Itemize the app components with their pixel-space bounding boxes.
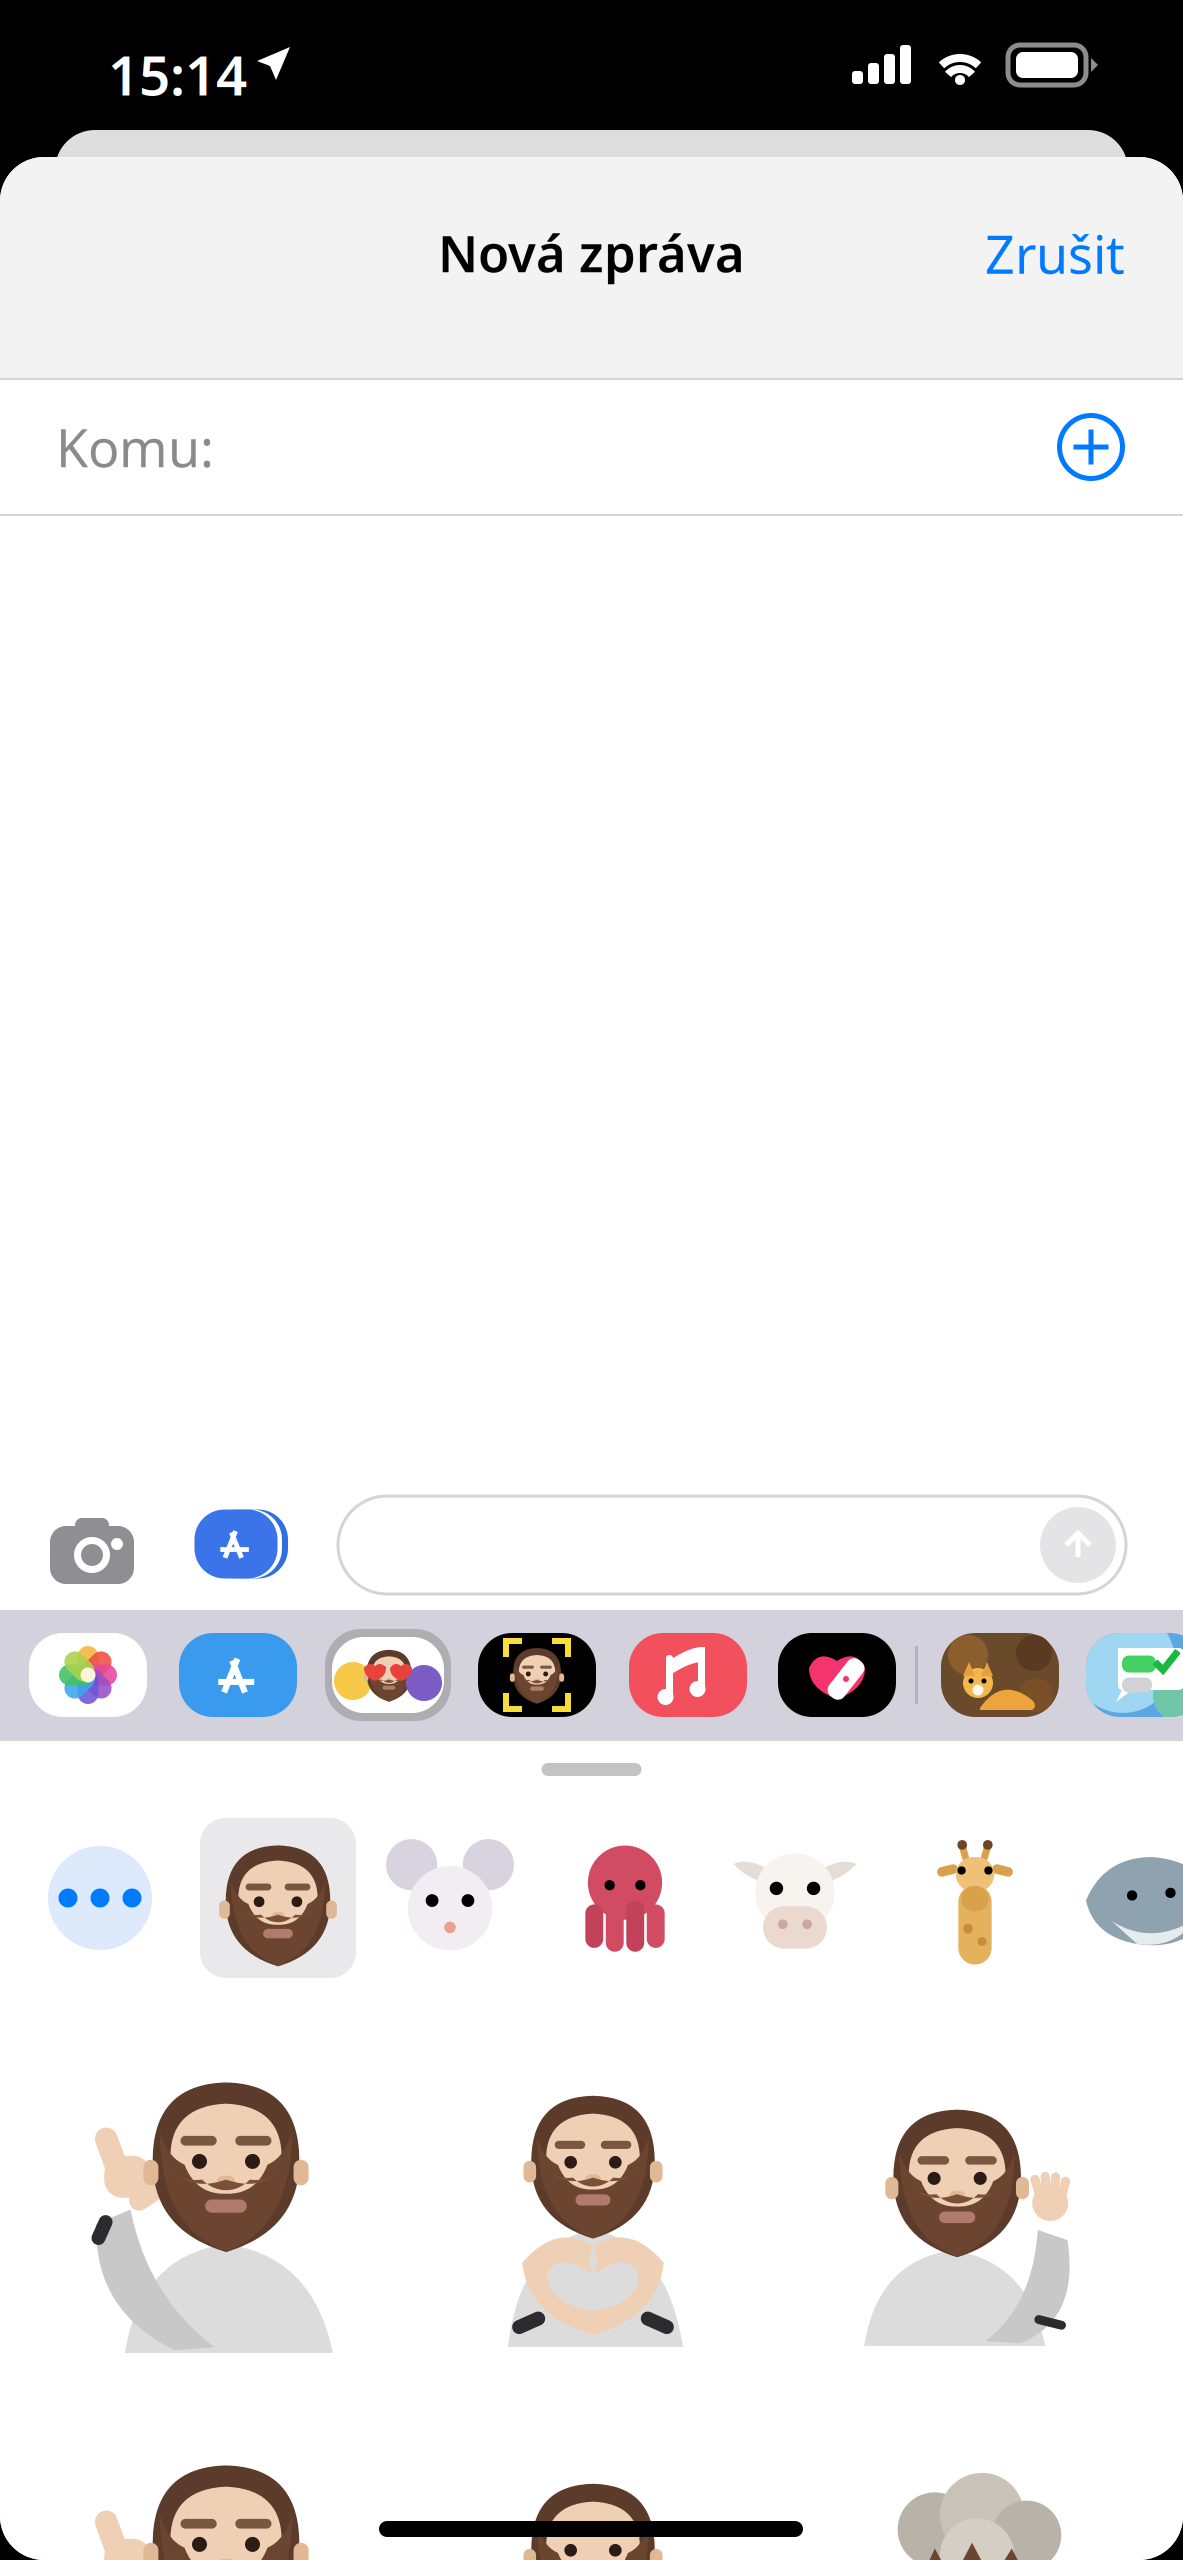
button[interactable]: Memoji <box>467 1620 607 1730</box>
button[interactable]: Apps <box>184 1504 288 1584</box>
button[interactable]: Mind blown sticker <box>853 2389 1101 2560</box>
button[interactable]: Giraffe <box>895 1818 1055 1978</box>
button[interactable]: Heart sticker <box>473 2423 713 2560</box>
button[interactable]: Octopus <box>545 1818 705 1978</box>
button[interactable]: Corgi <box>930 1620 1070 1730</box>
button[interactable]: App Store <box>168 1620 308 1730</box>
button[interactable]: Your Memoji <box>198 1818 358 1978</box>
button[interactable]: Shaka sticker <box>55 2063 340 2353</box>
button[interactable]: Shark <box>1070 1818 1183 1978</box>
button[interactable] <box>338 1496 1126 1594</box>
button[interactable]: Mouse <box>370 1818 530 1978</box>
staticText: Zrušit <box>985 219 1125 288</box>
button[interactable]: Crying laughing sticker <box>55 2446 340 2560</box>
staticText: 15:14 <box>108 38 247 111</box>
staticText: Nová zpráva <box>438 219 745 286</box>
staticText: Komu: <box>56 412 214 482</box>
button[interactable]: Zrušit <box>965 201 1145 306</box>
button[interactable]: Fitness <box>767 1620 907 1730</box>
button[interactable]: Cow <box>715 1818 875 1978</box>
button[interactable]: Camera <box>42 1502 142 1592</box>
button[interactable]: More Memoji <box>20 1818 180 1978</box>
button[interactable]: Messages <box>1075 1620 1183 1730</box>
button[interactable]: Memoji Stickers <box>318 1620 458 1730</box>
button[interactable]: Add contact <box>1043 399 1139 495</box>
button[interactable]: Photos <box>18 1620 158 1730</box>
button[interactable]: Music <box>618 1620 758 1730</box>
button[interactable]: Heart hands sticker <box>473 2035 713 2347</box>
button[interactable]: Wave sticker <box>853 2091 1101 2346</box>
